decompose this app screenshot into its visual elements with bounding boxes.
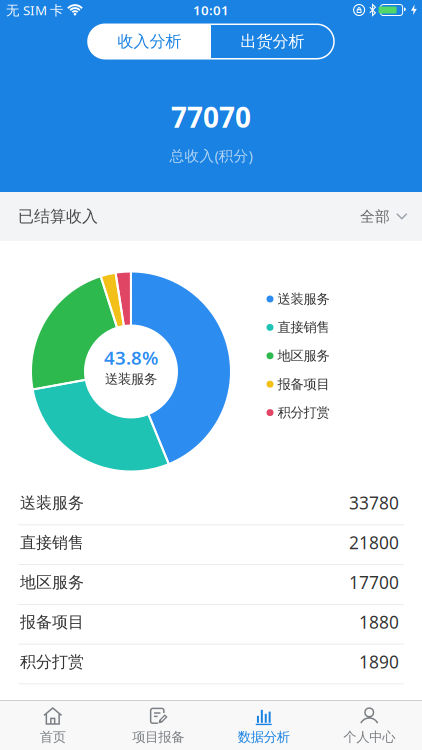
button[interactable]: 已结算收入	[0, 192, 422, 241]
staticText: 直接销售	[20, 533, 84, 552]
staticText: 报备项目	[277, 376, 329, 392]
staticText: 总收入(积分)	[169, 146, 252, 165]
staticText: 33780	[349, 491, 399, 514]
button[interactable]: 数据分析	[211, 700, 316, 749]
staticText: 17700	[349, 571, 399, 594]
staticText: 首页	[40, 729, 66, 745]
staticText: 收入分析	[117, 32, 181, 51]
staticText: 直接销售	[277, 319, 329, 336]
staticText: 出货分析	[240, 32, 304, 51]
staticText: 送装服务	[105, 371, 157, 387]
staticText: 送装服务	[277, 291, 329, 307]
staticText: 地区服务	[277, 348, 329, 364]
staticText: 无 SIM 卡	[6, 1, 63, 19]
staticText: 积分打赏	[20, 652, 84, 672]
staticText: 地区服务	[20, 572, 84, 592]
staticText: 77070	[171, 98, 251, 136]
button[interactable]: 收入分析	[88, 24, 211, 59]
staticText: 个人中心	[343, 729, 395, 745]
staticText: 送装服务	[20, 493, 84, 513]
button[interactable]: 出货分析	[211, 24, 334, 59]
staticText: 报备项目	[20, 612, 84, 632]
button[interactable]: 项目报备	[105, 700, 211, 749]
staticText: 1890	[359, 650, 399, 673]
staticText: 全部	[360, 207, 390, 225]
staticText: 积分打赏	[277, 404, 329, 421]
button[interactable]: 首页	[0, 700, 105, 749]
button[interactable]: 个人中心	[316, 700, 422, 749]
staticText: 项目报备	[132, 729, 184, 745]
staticText: 10:01	[193, 1, 229, 19]
staticText: 43.8%	[104, 345, 158, 370]
staticText: 数据分析	[238, 729, 290, 745]
staticText: 已结算收入	[18, 207, 98, 226]
staticText: 21800	[349, 531, 399, 554]
staticText: 1880	[359, 611, 399, 634]
